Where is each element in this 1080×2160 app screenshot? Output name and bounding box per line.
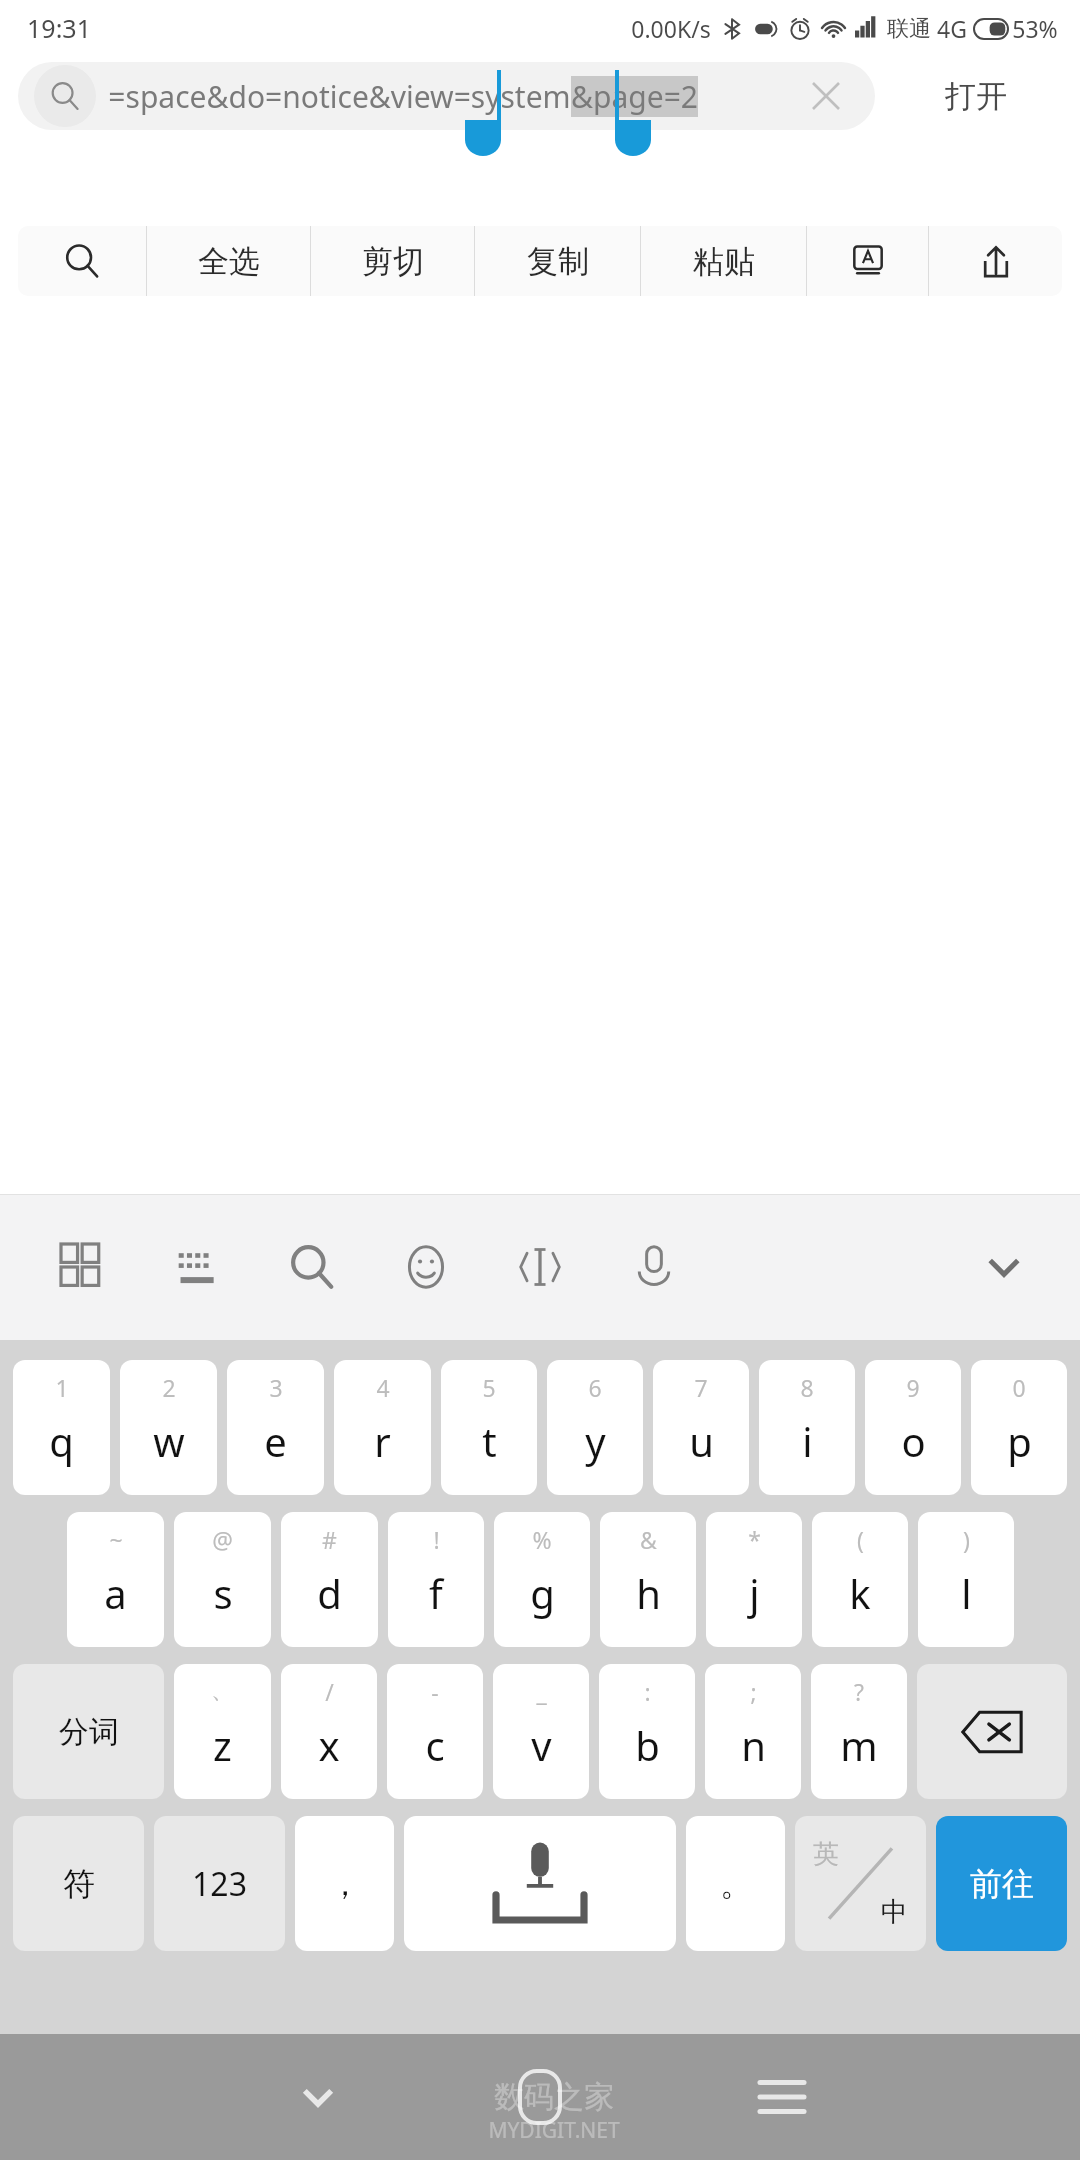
button[interactable]: Clear [799,69,853,123]
button[interactable]: / [281,1664,377,1799]
staticText: / [325,1676,334,1707]
staticText: 0.00K/s [631,13,711,44]
staticText: @ [212,1524,233,1555]
button[interactable]: @ [174,1512,271,1647]
staticText: 4G [937,13,967,44]
button[interactable]: 粘贴 [641,226,806,296]
staticText: 1 [55,1372,69,1403]
staticText: y [585,1414,606,1468]
staticText: # [322,1524,337,1555]
button[interactable]: 复制 [475,226,640,296]
button[interactable]: 1 [13,1360,110,1495]
button[interactable]: Recent apps [734,2049,830,2145]
staticText: r [374,1414,391,1468]
button[interactable]: 4 [334,1360,431,1495]
staticText: ， [329,1864,361,1904]
staticText: t [482,1414,497,1468]
staticText: ! [433,1524,440,1555]
staticText: 6 [588,1372,602,1403]
staticText: ~ [109,1524,123,1555]
button[interactable]: ( [812,1512,908,1647]
staticText: d [317,1566,342,1620]
staticText: v [531,1718,552,1772]
button[interactable]: 2 [120,1360,217,1495]
staticText: ( [857,1524,864,1555]
staticText: 打开 [945,77,1007,116]
staticText: 中 [881,1895,908,1929]
staticText: w [153,1414,185,1468]
button[interactable]: ? [811,1664,907,1799]
button[interactable]: 打开 [890,62,1062,130]
staticText: 4 [376,1372,390,1403]
staticText: 分词 [59,1713,119,1751]
button[interactable]: ~ [67,1512,164,1647]
button[interactable]: # [281,1512,378,1647]
staticText: g [530,1566,555,1620]
button[interactable]: Space [404,1816,676,1951]
staticText: % [532,1524,552,1555]
button[interactable]: % [494,1512,590,1647]
button[interactable]: ) [918,1512,1014,1647]
staticText: 。 [720,1864,752,1904]
button[interactable]: 9 [865,1360,961,1495]
staticText: m [840,1718,878,1772]
button[interactable]: ， [295,1816,394,1951]
button[interactable]: Back [270,2049,366,2145]
button[interactable]: Switch language [795,1816,926,1951]
staticText: q [49,1414,74,1468]
button[interactable]: =space&do=notice&view=system [18,62,875,130]
button[interactable]: : [599,1664,695,1799]
staticText: 7 [694,1372,708,1403]
button[interactable]: 7 [653,1360,749,1495]
button[interactable]: 8 [759,1360,855,1495]
button[interactable]: Search [276,1231,348,1303]
button[interactable]: _ [493,1664,589,1799]
staticText: p [1007,1414,1032,1468]
staticText: l [961,1566,972,1620]
button[interactable]: - [387,1664,483,1799]
button[interactable]: & [600,1512,696,1647]
button[interactable]: Move cursor [504,1231,576,1303]
button[interactable]: 6 [547,1360,643,1495]
staticText: b [635,1718,660,1772]
button[interactable]: * [706,1512,802,1647]
button[interactable]: Backspace [917,1664,1067,1799]
button[interactable]: 3 [227,1360,324,1495]
button[interactable]: ; [705,1664,801,1799]
button[interactable]: Hide keyboard [968,1231,1040,1303]
staticText: 3 [269,1372,283,1403]
button[interactable]: 全选 [147,226,310,296]
button[interactable]: Home [492,2049,588,2145]
button[interactable]: 、 [174,1664,271,1799]
button[interactable]: ! [388,1512,484,1647]
staticText: 前往 [970,1864,1034,1904]
button[interactable]: 剪切 [311,226,474,296]
staticText: u [689,1414,714,1468]
button[interactable]: Emoji [390,1231,462,1303]
button[interactable]: Tools [48,1231,120,1303]
staticText: &page=2 [571,76,698,117]
button[interactable]: Share [929,226,1062,296]
button[interactable]: Search [18,226,146,296]
button[interactable]: 0 [971,1360,1067,1495]
button[interactable]: 123 [154,1816,285,1951]
staticText: : [644,1676,651,1707]
staticText: ) [963,1524,970,1555]
button[interactable]: 5 [441,1360,537,1495]
staticText: - [431,1676,439,1707]
button[interactable]: Voice input [618,1231,690,1303]
staticText: c [425,1718,445,1772]
staticText: 全选 [198,242,260,281]
button[interactable]: 。 [686,1816,785,1951]
staticText: 5 [482,1372,496,1403]
staticText: _ [536,1676,547,1707]
staticText: ; [750,1676,757,1707]
button[interactable]: 分词 [13,1664,164,1799]
staticText: MYDIGIT.NET [488,2116,620,2145]
button[interactable]: Keyboard layout [162,1231,234,1303]
button[interactable]: 前往 [936,1816,1067,1951]
button[interactable]: Translate [807,226,928,296]
staticText: j [749,1566,760,1620]
button[interactable]: 符 [13,1816,144,1951]
staticText: 53% [1012,13,1058,44]
